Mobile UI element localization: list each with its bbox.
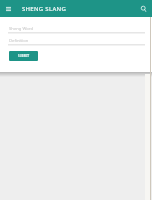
- button[interactable]: Search: [138, 0, 149, 17]
- staticText: Definition: [9, 38, 29, 44]
- button[interactable]: Open navigation menu: [3, 0, 13, 17]
- staticText: Sheng Word: [9, 26, 34, 32]
- staticText: SHENG SLANG: [22, 5, 67, 13]
- staticText: SUBMIT: [18, 54, 30, 58]
- button[interactable]: SUBMIT: [9, 51, 38, 61]
